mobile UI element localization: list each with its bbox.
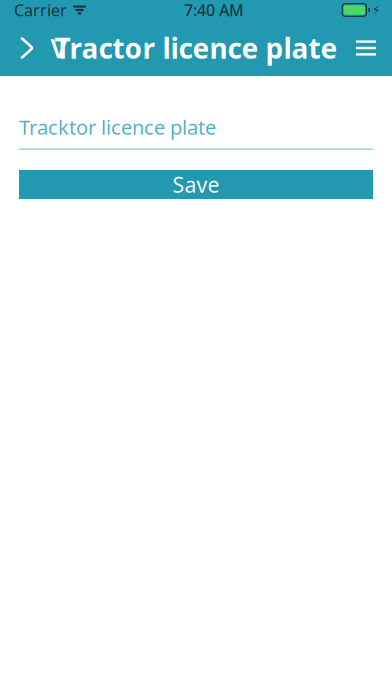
staticText: Save <box>172 170 219 199</box>
staticText: Carrier <box>14 0 67 21</box>
staticText: ⚡︎ <box>372 3 380 17</box>
button[interactable]: Back <box>10 26 44 70</box>
button[interactable]: Home <box>44 26 74 70</box>
button[interactable]: Tracktor licence plate <box>19 116 373 150</box>
staticText: Tracktor licence plate <box>19 114 216 140</box>
staticText: Tractor licence plate <box>54 29 337 67</box>
staticText: 7:40 AM <box>184 0 244 21</box>
button[interactable]: Menu <box>346 26 386 70</box>
button[interactable]: Save <box>19 170 373 199</box>
staticText: V <box>50 30 67 66</box>
